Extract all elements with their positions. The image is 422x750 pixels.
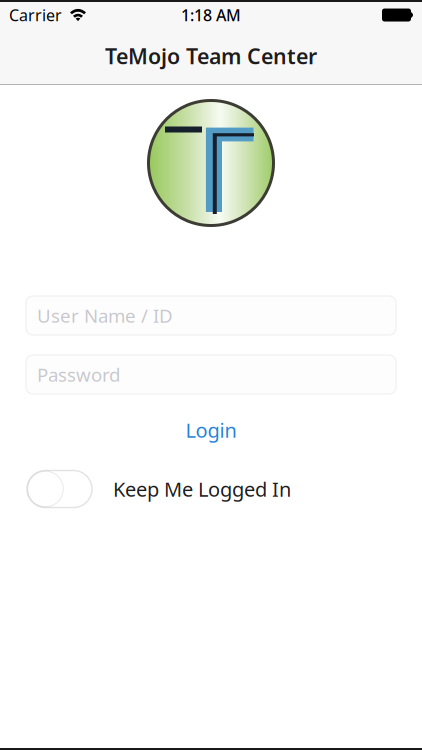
staticText: Password: [37, 362, 120, 387]
staticText: User Name / ID: [37, 303, 173, 328]
staticText: Keep Me Logged In: [113, 476, 291, 502]
staticText: Login: [185, 417, 236, 443]
staticText: 1:18 AM: [181, 4, 241, 26]
staticText: TeMojo Team Center: [105, 42, 317, 70]
button[interactable]: Login: [185, 419, 236, 441]
staticText: Carrier: [9, 4, 62, 26]
button[interactable]: Keep Me Logged In: [0, 471, 422, 507]
